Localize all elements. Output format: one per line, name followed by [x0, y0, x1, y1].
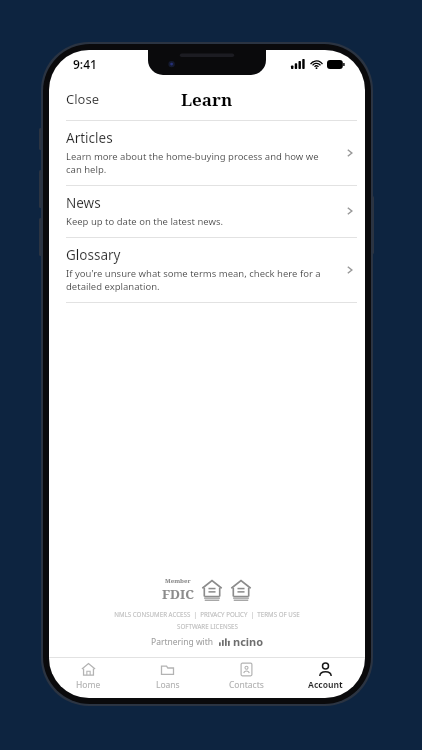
staticText: Learn more about the home-buying process…	[66, 150, 335, 176]
other: Account	[318, 662, 333, 677]
button[interactable]: Loans	[128, 658, 207, 698]
button[interactable]: Home	[49, 658, 128, 698]
staticText: Keep up to date on the latest news.	[66, 215, 224, 228]
staticText: Home	[76, 679, 101, 691]
staticText: Account	[308, 679, 343, 691]
button[interactable]: Account	[286, 658, 365, 698]
staticText: Glossary	[66, 246, 121, 264]
staticText: ncino	[233, 634, 264, 649]
staticText: Member	[165, 577, 191, 585]
staticText: Loans	[156, 679, 180, 691]
button[interactable]: Articles	[49, 121, 365, 185]
staticText: If you're unsure what some terms mean, c…	[66, 267, 335, 293]
button[interactable]: Contacts	[207, 658, 286, 698]
other: Contacts	[239, 662, 254, 677]
staticText: Learn	[181, 88, 233, 111]
staticText: 9:41	[73, 56, 97, 72]
button[interactable]: SOFTWARE LICENSES	[177, 622, 238, 630]
other: Home	[81, 662, 96, 677]
staticText: Close	[66, 90, 99, 108]
other: Loans	[160, 662, 175, 677]
button[interactable]: Glossary	[49, 238, 365, 302]
staticText: NMLS CONSUMER ACCESS | PRIVACY POLICY | …	[114, 610, 300, 618]
staticText: Articles	[66, 129, 113, 147]
staticText: Partnering with	[151, 636, 214, 648]
staticText: FDIC	[162, 585, 194, 603]
staticText: News	[66, 194, 101, 212]
staticText: Contacts	[229, 679, 264, 691]
button[interactable]: News	[49, 186, 365, 237]
button[interactable]: Close	[49, 84, 111, 114]
